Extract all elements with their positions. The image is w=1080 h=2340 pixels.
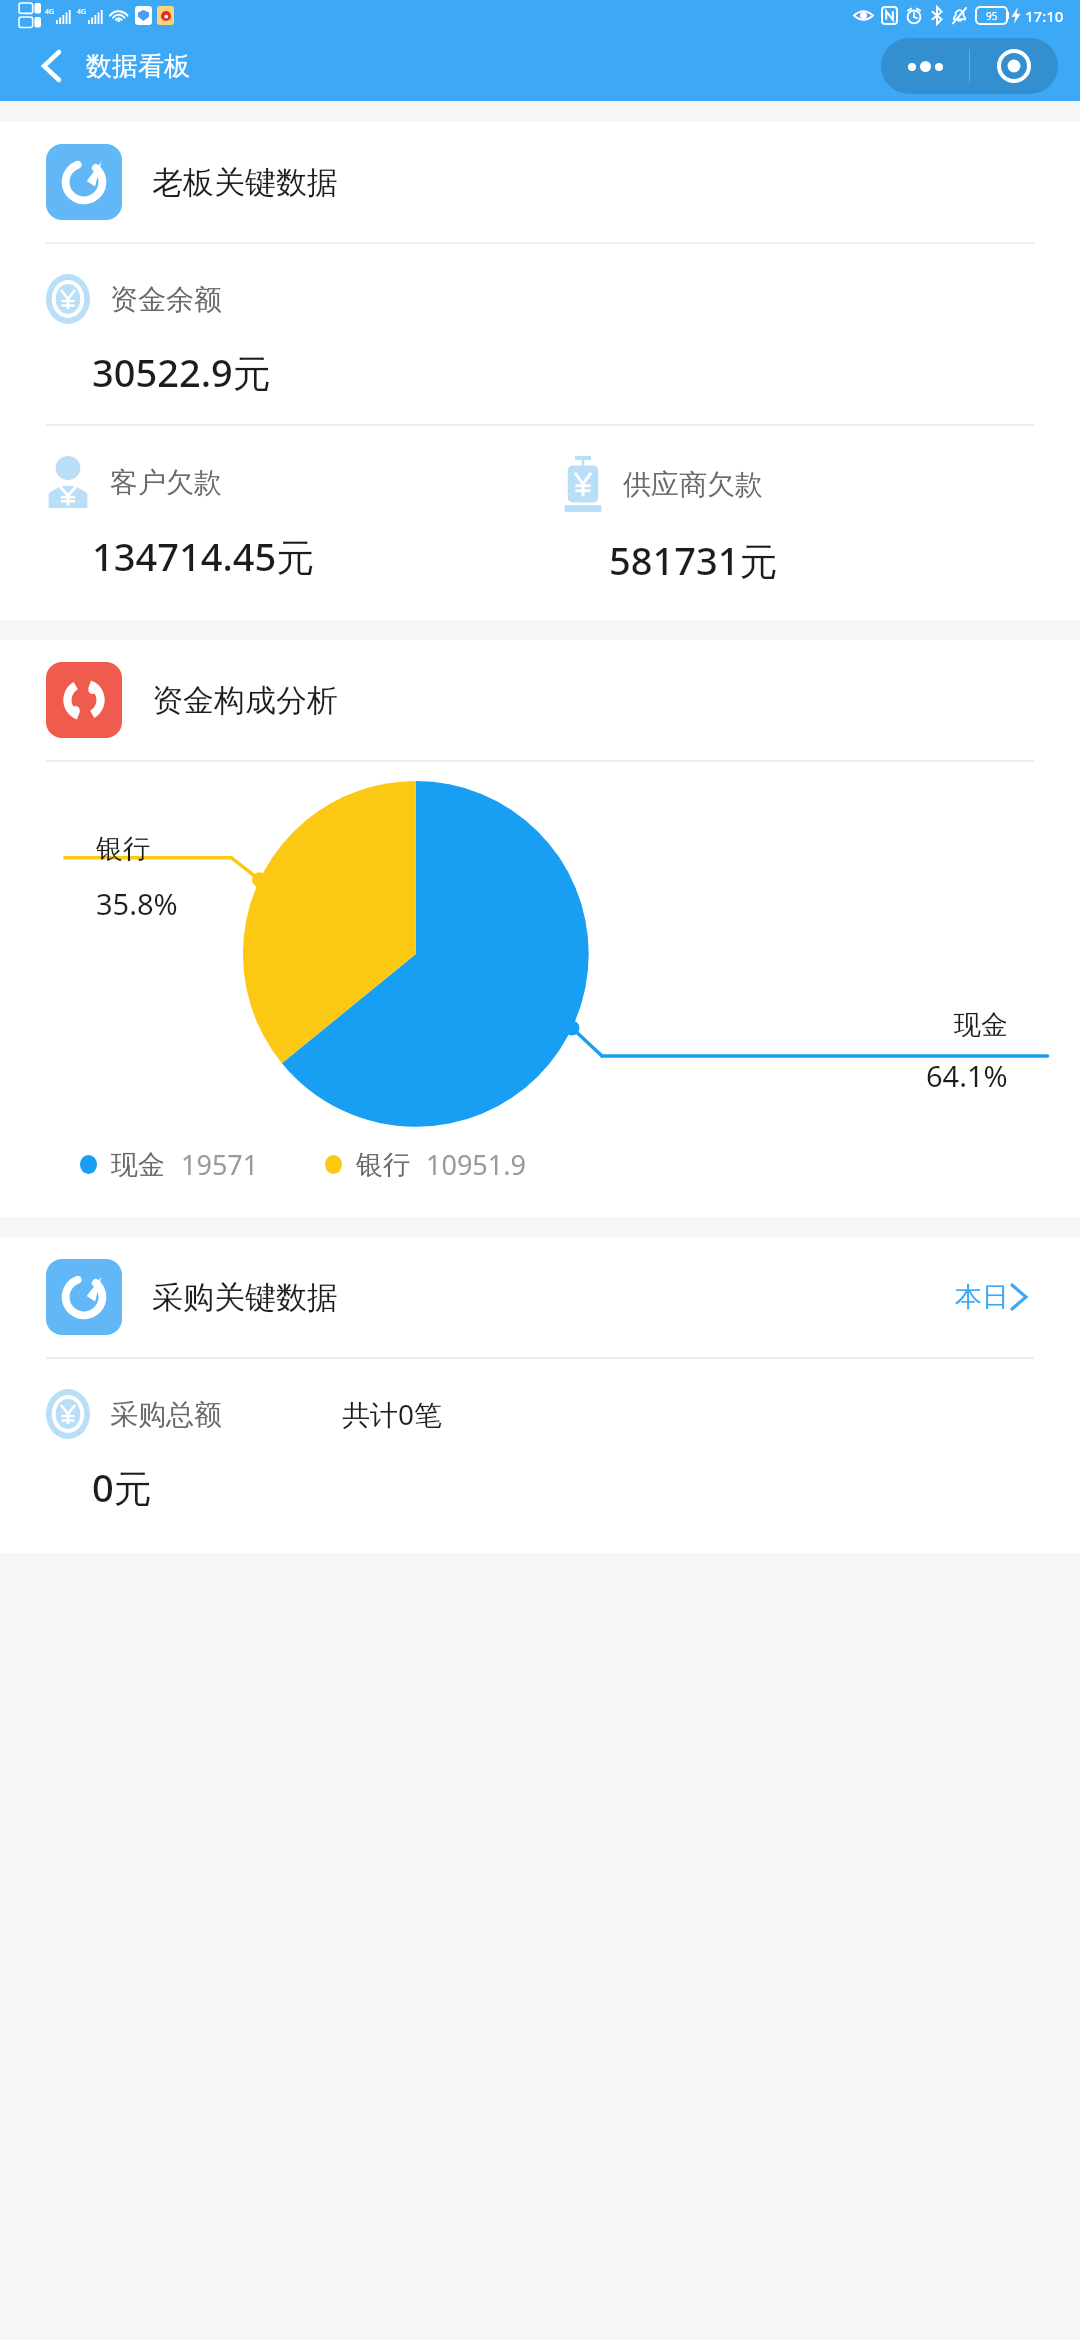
staticText: 采购关键数据 [152,1278,338,1317]
staticText: 4G [77,7,87,17]
staticText: 资金余额 [110,282,222,317]
staticText: 134714.45元 [92,530,315,582]
staticText: 本日 [955,1280,1009,1314]
staticText: 银行 [96,832,150,866]
button[interactable]: Close [970,38,1058,94]
staticText: 银行 [356,1148,410,1182]
staticText: 35.8% [96,884,178,923]
staticText: 4G [45,7,55,17]
staticText: 老板关键数据 [152,163,338,202]
staticText: 10951.9 [426,1146,526,1183]
staticText: 0元 [92,1461,152,1513]
staticText: 现金 [954,1008,1008,1042]
button[interactable]: 本日 [947,1272,1034,1322]
staticText: 资金构成分析 [152,681,338,720]
staticText: 19571 [181,1146,259,1183]
staticText: 共计0笔 [342,1395,443,1433]
staticText: 客户欠款 [110,465,222,500]
button[interactable]: Back [28,43,74,89]
staticText: 数据看板 [86,50,190,83]
staticText: 采购总额 [110,1397,222,1432]
staticText: 581731元 [609,534,778,586]
button[interactable]: 采购总额 [0,1359,1080,1553]
button[interactable]: More options [881,38,969,94]
staticText: 现金 [111,1148,165,1182]
staticText: 17:10 [1025,6,1064,26]
button[interactable]: 资金余额 [0,244,1080,424]
staticText: 供应商欠款 [623,467,763,502]
staticText: 95 [986,9,998,23]
staticText: 64.1% [926,1056,1008,1095]
staticText: 30522.9元 [92,346,271,398]
button[interactable]: 客户欠款 [46,456,563,582]
button[interactable]: 供应商欠款 [563,456,1080,586]
